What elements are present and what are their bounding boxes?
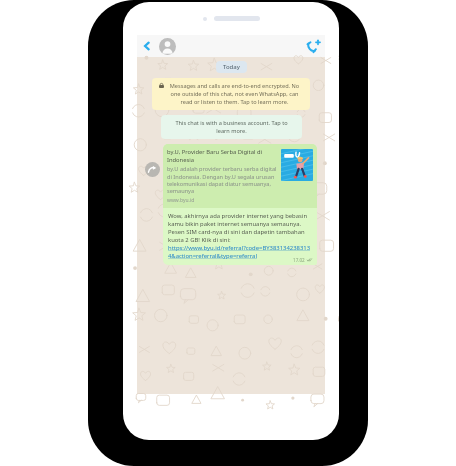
button[interactable]: Contact avatar [159, 38, 176, 55]
button[interactable]: Add call [306, 39, 321, 54]
button[interactable]: by.U, Provider Baru Serba Digital di Ind… [163, 144, 317, 265]
staticText: by.U adalah provider terbaru serba digit… [167, 165, 277, 195]
button[interactable]: Messages and calls are end-to-end encryp… [152, 78, 310, 110]
button[interactable]: Today [216, 61, 247, 73]
staticText: This chat is with a business account. Ta… [168, 119, 295, 135]
staticText: by.U, Provider Baru Serba Digital di Ind… [167, 148, 277, 164]
staticText: 17.02 [293, 257, 305, 263]
staticText: Messages and calls are end-to-end encryp… [166, 82, 303, 106]
button[interactable]: Forward [145, 162, 160, 177]
button[interactable]: https://www.byu.id/referral?code=BY38313… [168, 244, 312, 260]
staticText: Today [223, 63, 240, 71]
button[interactable]: This chat is with a business account. Ta… [161, 115, 302, 139]
button[interactable]: Back [140, 39, 154, 53]
staticText: Wow, akhirnya ada provider internet yang… [168, 212, 312, 244]
staticText: www.byu.id [167, 197, 195, 204]
